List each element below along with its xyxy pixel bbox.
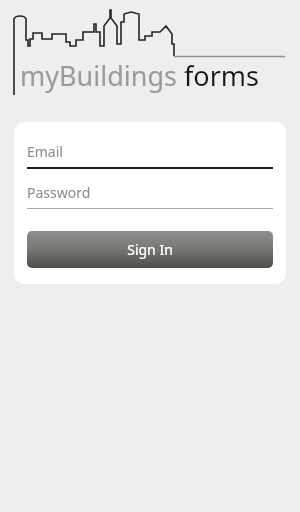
staticText: forms: [177, 57, 259, 94]
staticText: Sign In: [127, 240, 173, 259]
button[interactable]: Sign In: [27, 231, 273, 268]
staticText: Email: [27, 142, 63, 161]
staticText: Password: [27, 183, 91, 202]
button[interactable]: Password: [27, 169, 273, 209]
button[interactable]: Email: [27, 138, 273, 169]
staticText: myBuildings: [20, 57, 177, 94]
